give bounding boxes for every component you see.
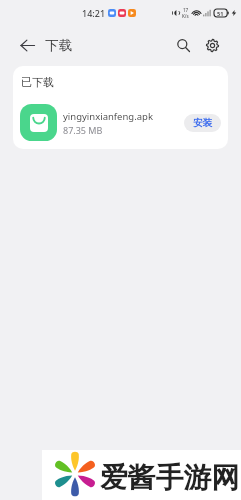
button[interactable]: yingyinxianfeng.apk [13,100,228,145]
button[interactable]: Settings [201,34,224,57]
staticText: 下载 [45,37,72,54]
staticText: 爱酱手游网 [100,460,239,495]
button[interactable]: Back [16,34,38,56]
staticText: yingyinxianfeng.apk [63,110,153,123]
staticText: 51 [217,10,224,17]
staticText: 已下载 [21,75,54,89]
button[interactable]: Search [172,34,195,57]
staticText: 87.35 MB [63,124,103,136]
staticText: K/s [182,13,189,19]
button[interactable]: 安装 [184,114,221,132]
staticText: 14:21 [82,7,106,19]
staticText: 安装 [193,117,212,129]
staticText: 17 [183,7,189,13]
